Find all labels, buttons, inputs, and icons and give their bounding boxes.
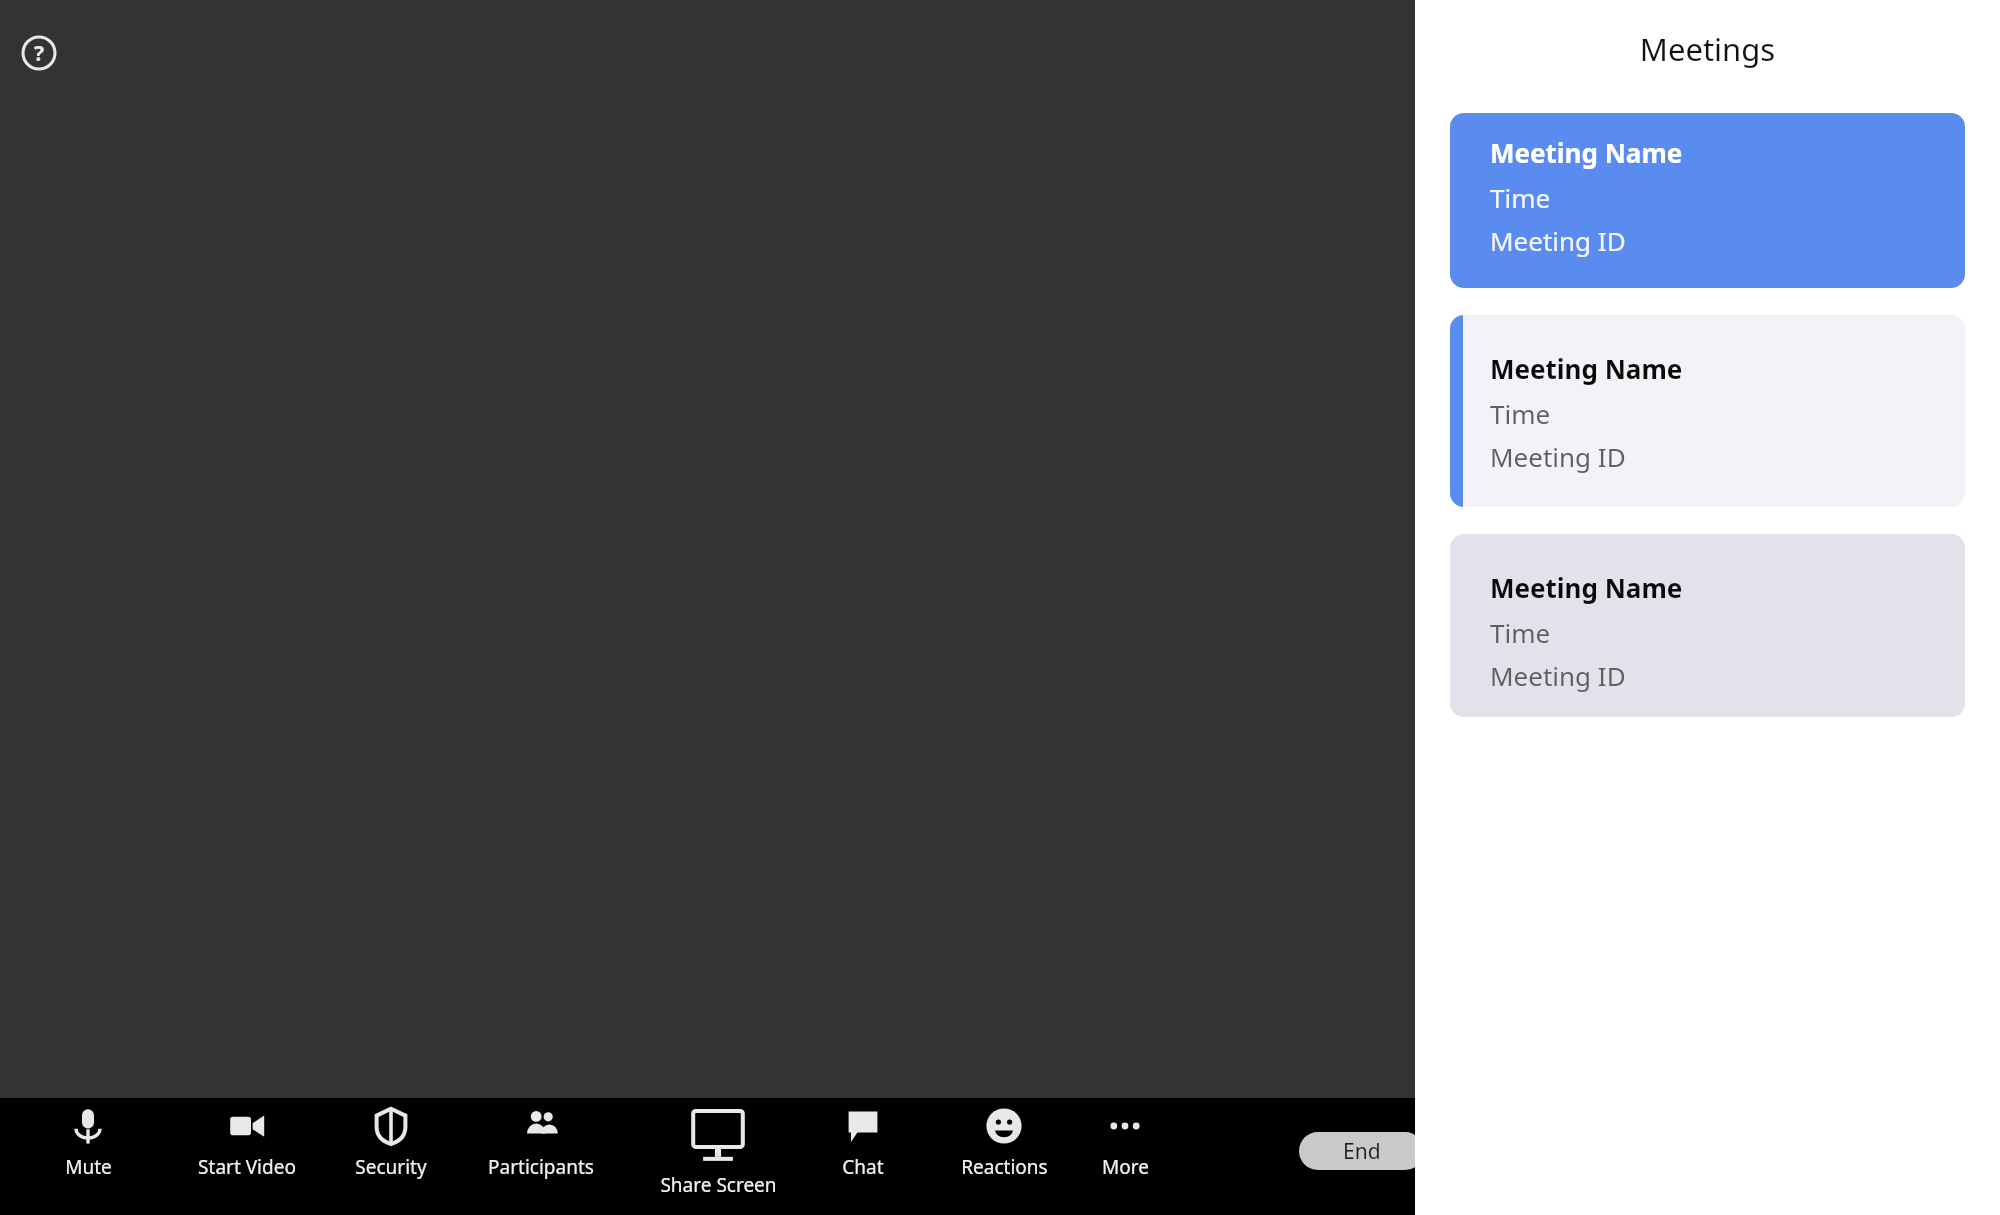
staticText: Meeting ID <box>1490 658 1626 693</box>
button[interactable]: Meeting Name <box>1450 113 1965 288</box>
button[interactable]: Meeting Name <box>1450 534 1965 717</box>
staticText: Security <box>355 1154 427 1180</box>
button[interactable]: End <box>1299 1132 1424 1170</box>
button[interactable]: More <box>1050 1106 1200 1180</box>
button[interactable]: Reactions <box>929 1106 1079 1180</box>
button[interactable]: Meeting Name <box>1450 315 1965 507</box>
staticText: Start Video <box>198 1154 296 1180</box>
staticText: Meetings <box>1415 28 2000 70</box>
button[interactable]: Start Video <box>172 1106 322 1180</box>
staticText: Reactions <box>961 1154 1048 1180</box>
staticText: Meeting Name <box>1490 135 1683 170</box>
staticText: Participants <box>488 1154 594 1180</box>
staticText: Time <box>1490 180 1551 215</box>
staticText: End <box>1343 1137 1381 1166</box>
staticText: Share Screen <box>660 1172 777 1198</box>
button[interactable]: Participants <box>466 1106 616 1180</box>
staticText: Meeting ID <box>1490 439 1626 474</box>
button[interactable]: Help <box>18 32 60 74</box>
staticText: Meeting Name <box>1490 351 1683 386</box>
staticText: Time <box>1490 396 1551 431</box>
staticText: More <box>1102 1154 1149 1180</box>
button[interactable]: Mute <box>13 1106 163 1180</box>
staticText: ? <box>34 39 45 68</box>
button[interactable]: Share Screen <box>643 1106 793 1198</box>
staticText: Meeting Name <box>1490 570 1683 605</box>
staticText: Time <box>1490 615 1551 650</box>
staticText: Chat <box>842 1154 884 1180</box>
staticText: Meeting ID <box>1490 223 1626 258</box>
staticText: Mute <box>65 1154 112 1180</box>
button[interactable]: Chat <box>788 1106 938 1180</box>
button[interactable]: Security <box>316 1106 466 1180</box>
